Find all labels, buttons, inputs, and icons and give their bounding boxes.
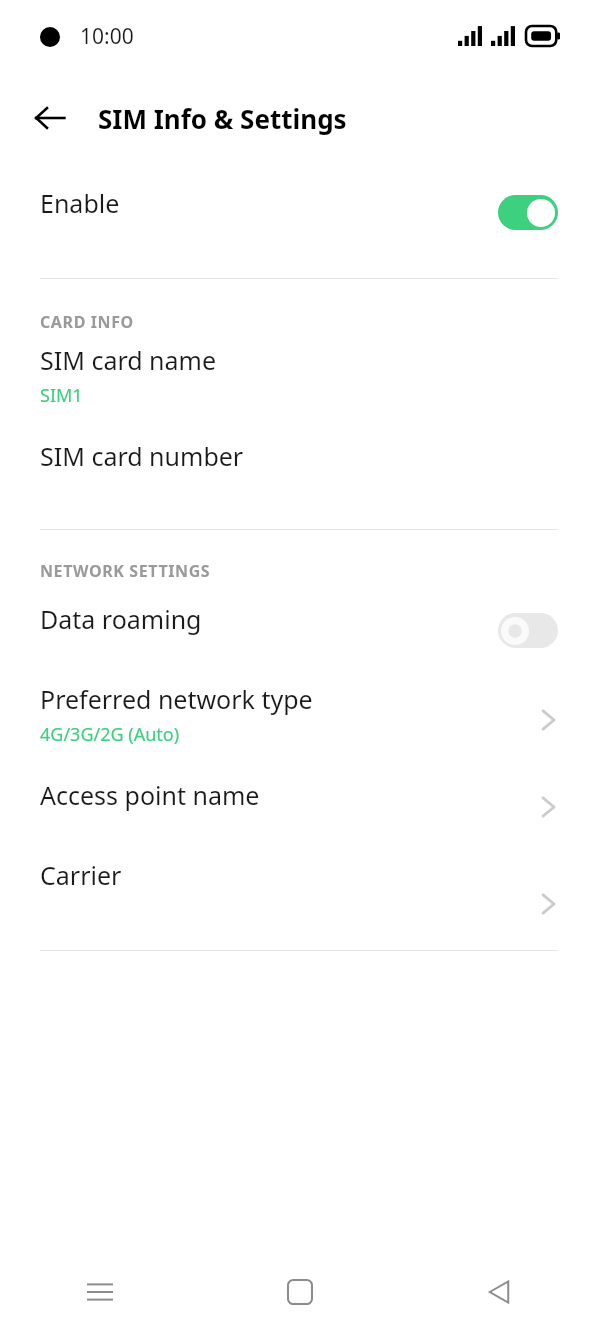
button[interactable]: Access point name [0,766,598,848]
staticText: 10:00 [80,22,134,51]
staticText: CARD INFO [40,311,134,333]
staticText: SIM card name [40,343,217,377]
button[interactable]: SIM card number [0,429,598,505]
button[interactable]: Home [200,1254,399,1330]
staticText: NETWORK SETTINGS [40,560,211,582]
staticText: Data roaming [40,602,202,636]
button[interactable]: Data roaming toggle, off [498,613,558,648]
staticText: Access point name [40,778,260,812]
staticText: 4G/3G/2G (Auto) [40,722,180,747]
button[interactable]: Back [22,90,78,146]
button[interactable]: Data roaming [0,586,598,674]
button[interactable]: SIM card name [0,337,598,429]
button[interactable]: Enable [0,164,598,260]
staticText: Preferred network type [40,682,313,716]
button[interactable]: Carrier [0,848,598,932]
staticText: SIM card number [40,439,244,473]
staticText: Enable [40,186,120,220]
staticText: SIM1 [40,383,83,408]
button[interactable]: Enable toggle, on [498,195,558,230]
button[interactable]: Preferred network type [0,674,598,766]
staticText: Carrier [40,858,122,892]
staticText: SIM Info & Settings [98,101,347,136]
button[interactable]: Back [399,1254,598,1330]
button[interactable]: Recent apps [0,1254,200,1330]
